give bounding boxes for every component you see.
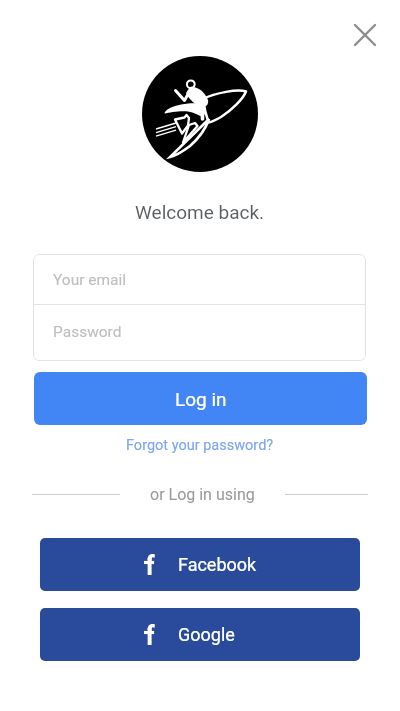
staticText: Password [53, 323, 122, 341]
staticText: Facebook [178, 554, 257, 575]
staticText: Log in [175, 388, 227, 410]
staticText: or Log in using [150, 485, 255, 504]
button[interactable]: Password [33, 305, 366, 361]
button[interactable]: Google [40, 608, 360, 661]
button[interactable]: Close [343, 13, 387, 57]
button[interactable]: Facebook [40, 538, 360, 591]
staticText: Welcome back. [135, 201, 265, 223]
staticText: Google [178, 624, 235, 645]
button[interactable]: Your email [33, 254, 366, 304]
button[interactable]: Log in [34, 372, 367, 425]
staticText: Your email [53, 271, 127, 289]
staticText: Forgot your password? [126, 437, 274, 454]
button[interactable]: Forgot your password? [116, 430, 284, 461]
